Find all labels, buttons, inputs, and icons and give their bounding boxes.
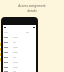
- button[interactable]: [3, 40, 36, 45]
- button[interactable]: Back: [3, 25, 7, 29]
- button[interactable]: [3, 65, 36, 70]
- button[interactable]: [3, 70, 36, 72]
- staticText: Access assignment details: [18, 4, 46, 13]
- button[interactable]: [3, 60, 36, 65]
- button[interactable]: [3, 35, 36, 40]
- button[interactable]: [3, 55, 36, 60]
- button[interactable]: More options: [32, 25, 36, 29]
- button[interactable]: [3, 45, 36, 50]
- button[interactable]: [3, 50, 36, 55]
